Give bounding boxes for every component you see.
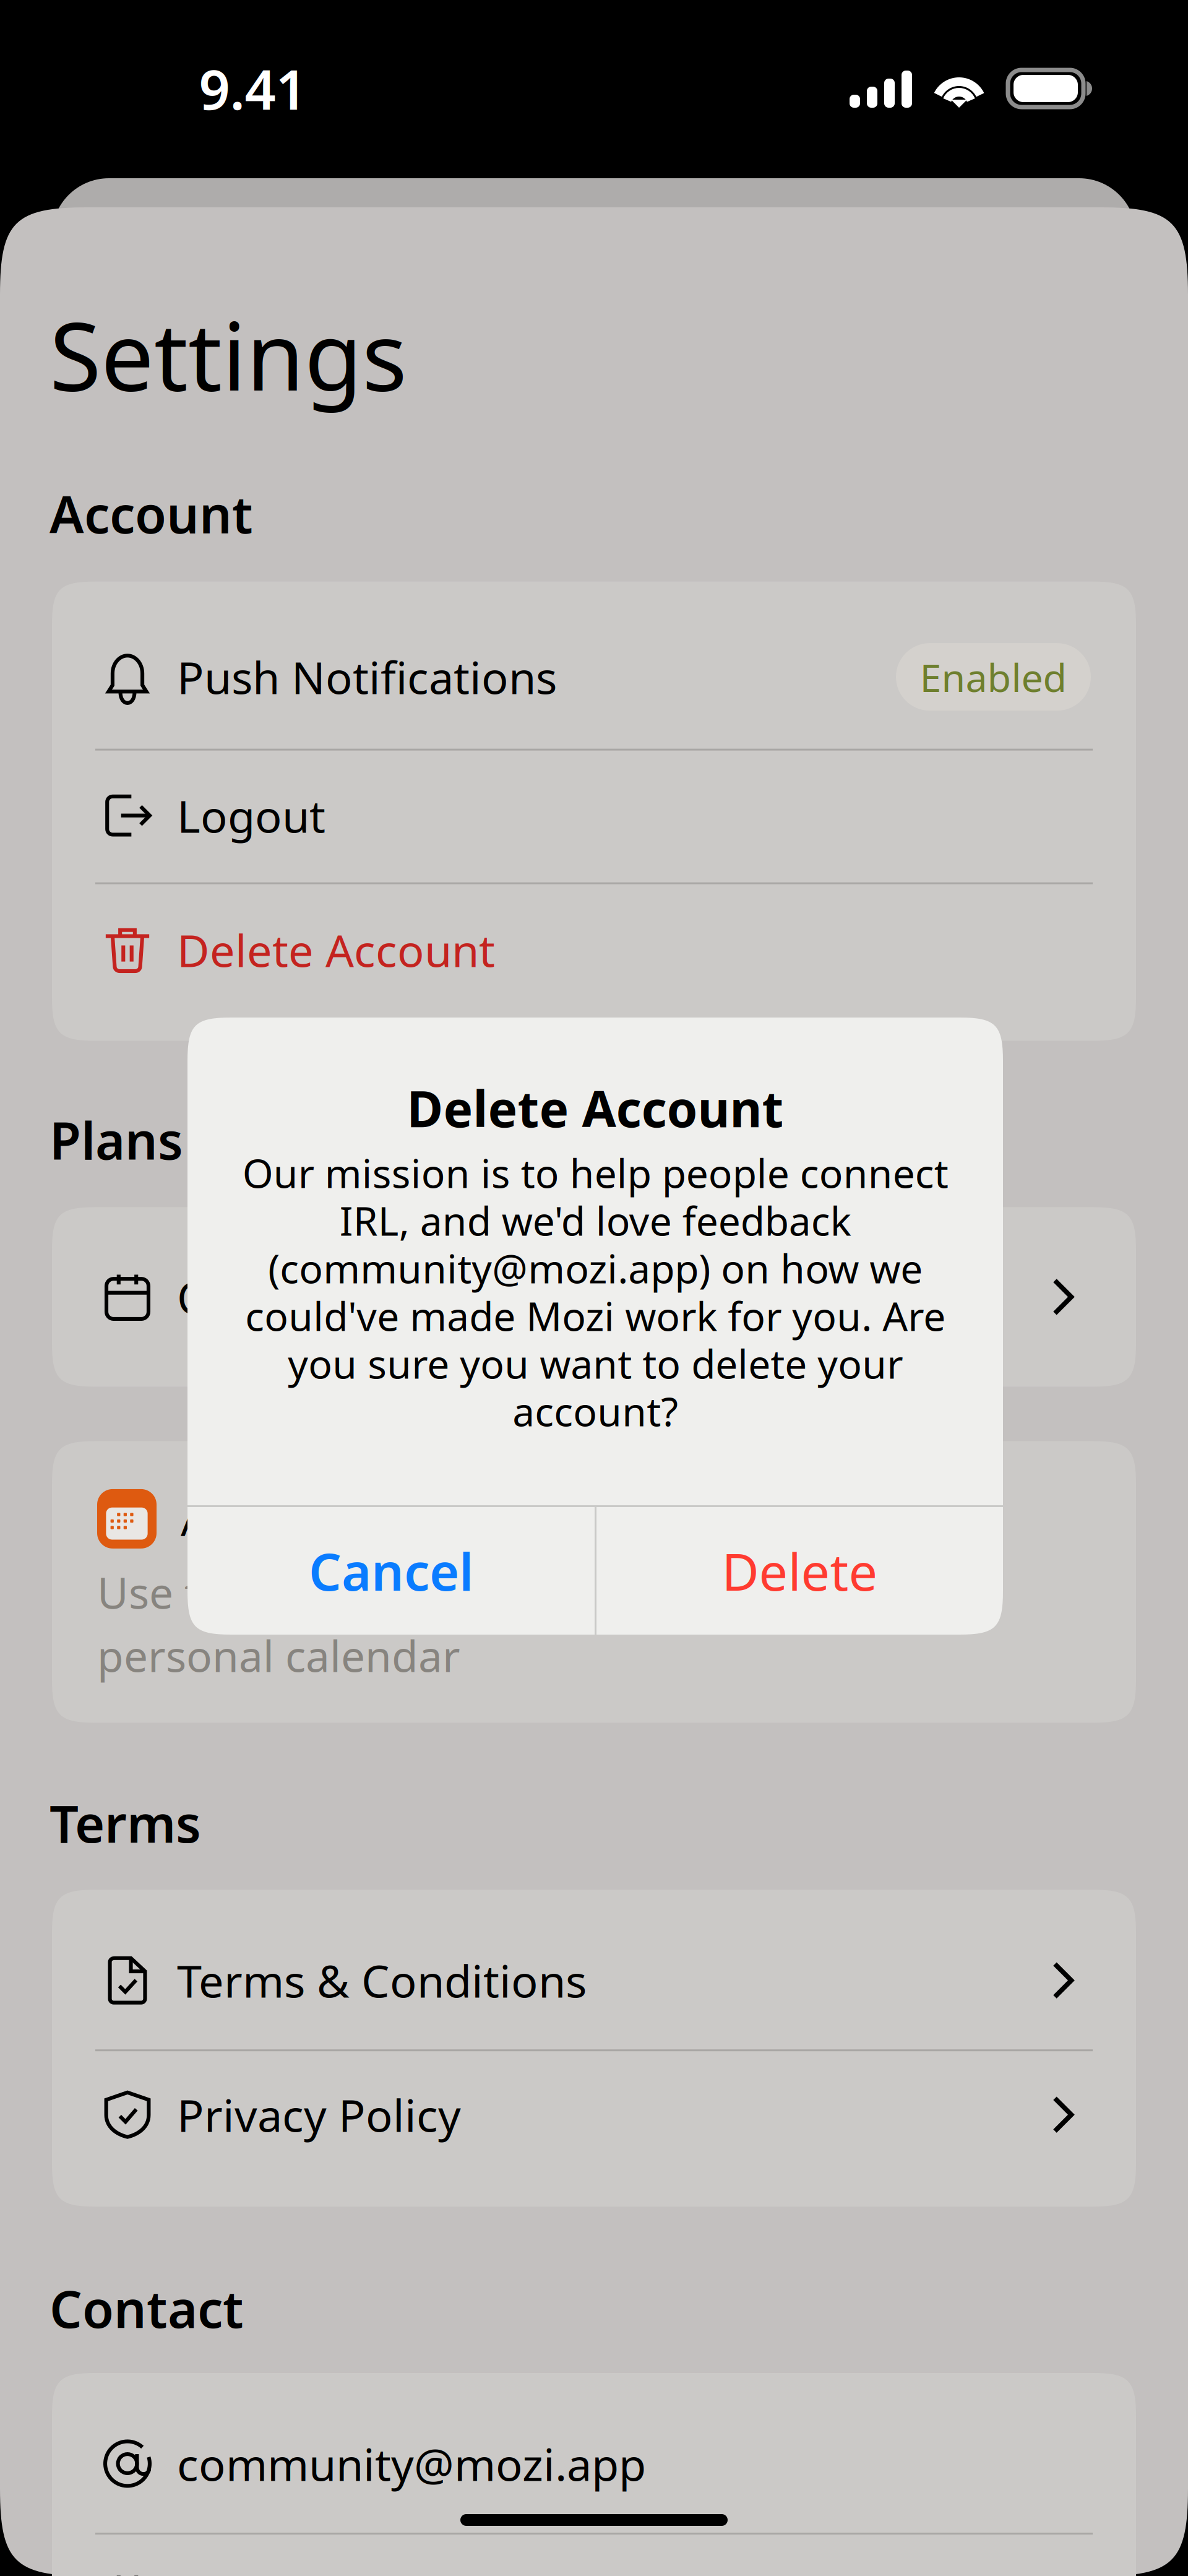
- staticText: 9.41: [199, 52, 307, 125]
- staticText: Use this link to add Mozi plans to your …: [97, 1564, 865, 1684]
- staticText: Account: [49, 480, 253, 548]
- button[interactable]: Push Notifications: [52, 605, 1136, 749]
- button[interactable]: Calendars: [52, 1231, 1136, 1363]
- staticText: Logout: [177, 786, 325, 845]
- button[interactable]: Terms & Conditions: [52, 1913, 1136, 2048]
- staticText: community@mozi.app: [177, 2434, 646, 2493]
- staticText: Contact: [49, 2274, 244, 2342]
- staticText: Delete Account: [177, 920, 495, 979]
- button[interactable]: Delete Account: [52, 882, 1136, 1017]
- staticText: Enabled: [920, 651, 1067, 703]
- staticText: Calendars: [177, 1267, 386, 1326]
- staticText: Plans: [49, 1106, 183, 1174]
- staticText: Delete Account: [407, 1075, 784, 1141]
- staticText: Cancel: [309, 1537, 473, 1605]
- staticText: Privacy Policy: [177, 2085, 461, 2144]
- staticText: Terms & Conditions: [177, 1951, 587, 2010]
- staticText: Add Mozi to your calendar: [181, 1489, 731, 1548]
- staticText: Push Notifications: [177, 647, 557, 706]
- button[interactable]: Logout: [52, 749, 1136, 882]
- button[interactable]: Privacy Policy: [52, 2048, 1136, 2182]
- staticText: Terms: [49, 1789, 201, 1857]
- staticText: Our mission is to help people connect IR…: [242, 1146, 948, 1437]
- button[interactable]: Cancel: [187, 1507, 595, 1635]
- button[interactable]: Delete: [596, 1507, 1003, 1635]
- button[interactable]: community@mozi.app: [52, 2397, 1136, 2531]
- staticText: Delete: [722, 1537, 878, 1605]
- staticText: Settings: [49, 292, 407, 416]
- button[interactable]: [52, 2531, 1136, 2576]
- button[interactable]: Add Mozi to your calendar: [52, 1465, 1188, 1699]
